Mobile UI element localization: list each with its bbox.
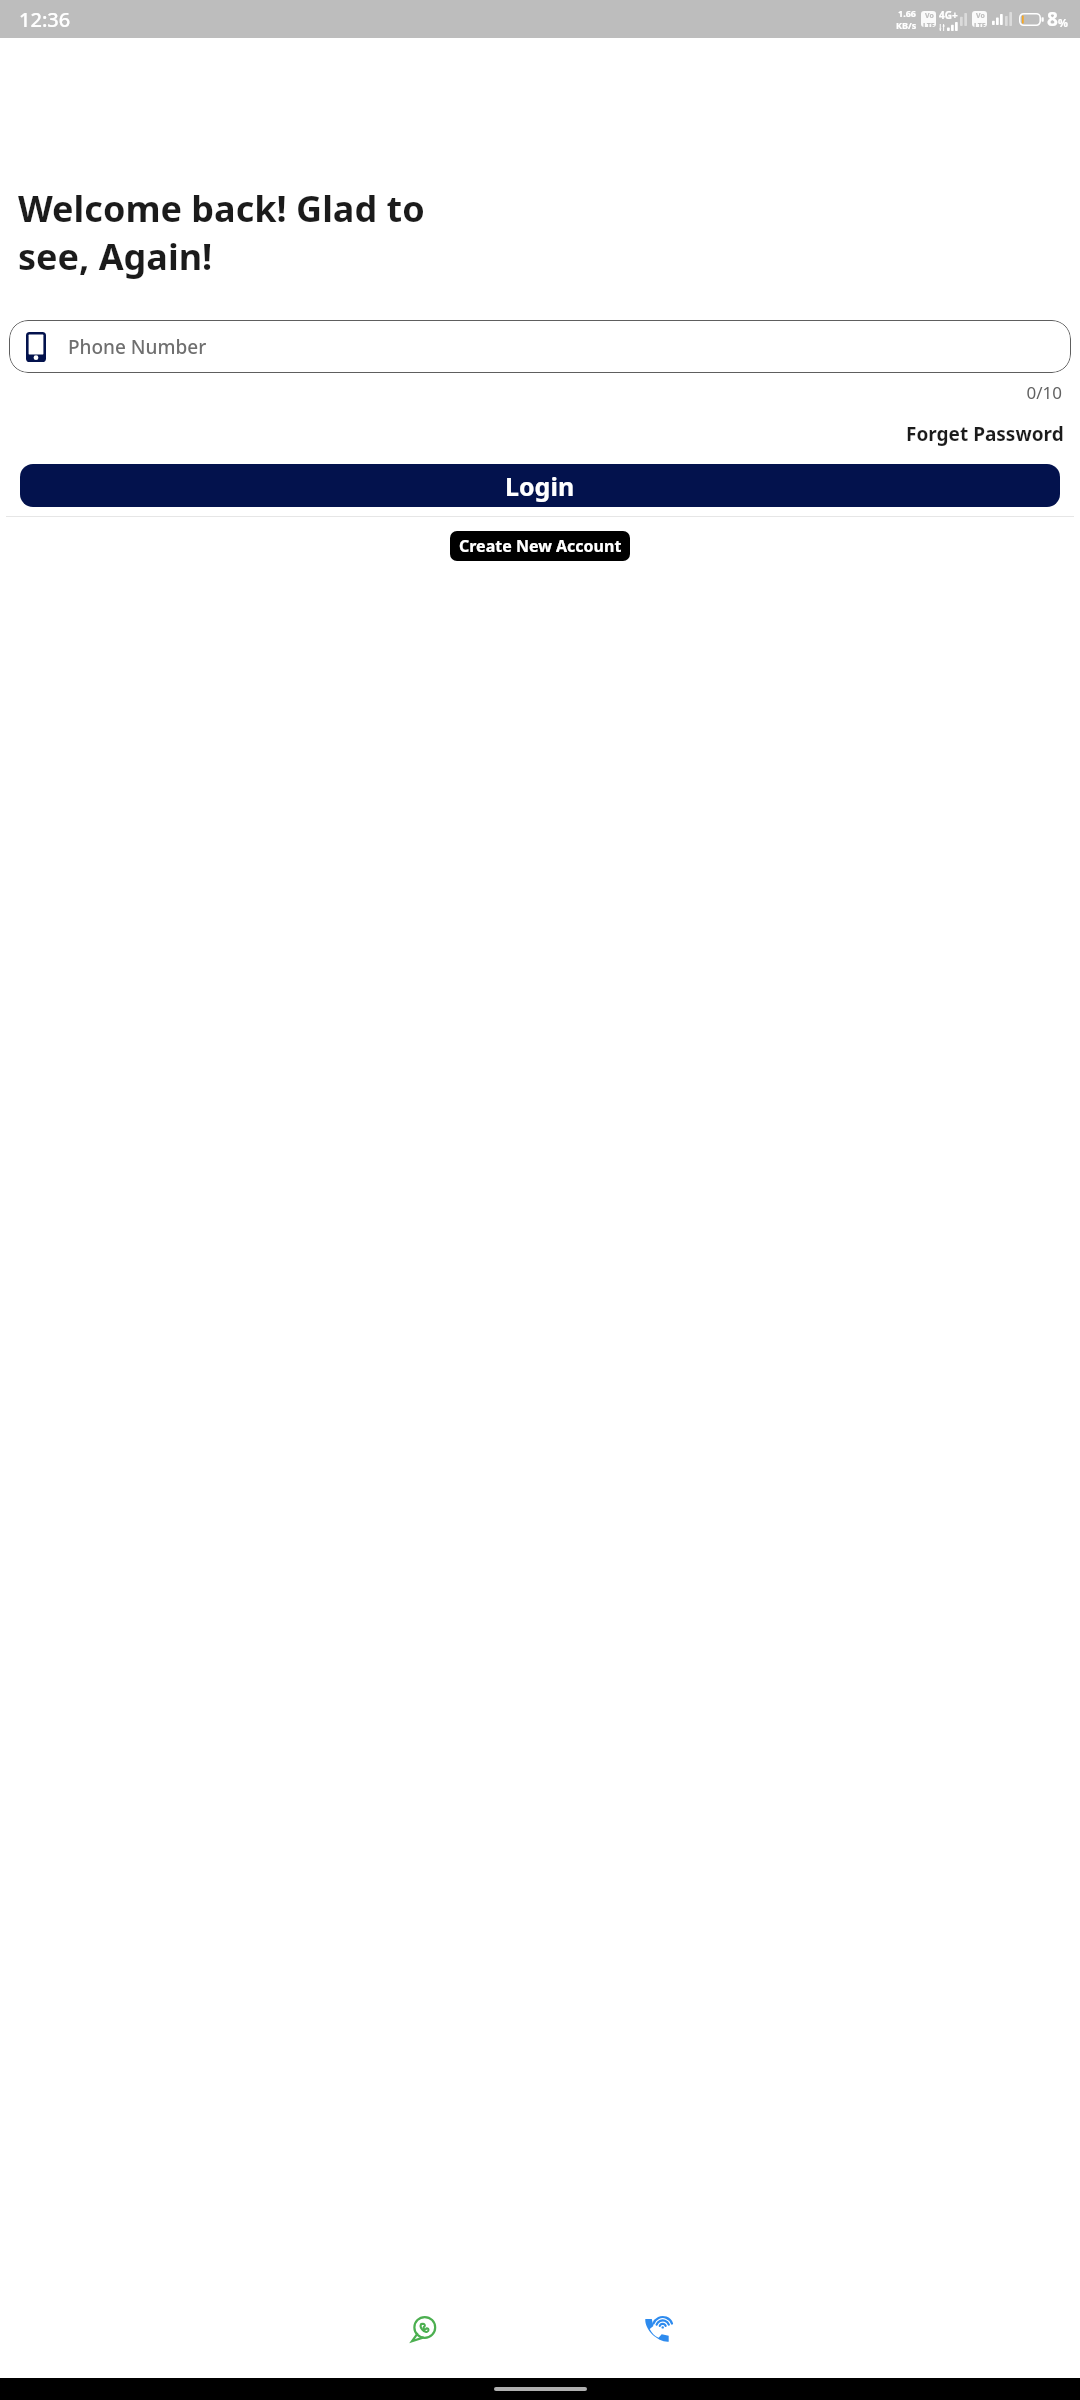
- button[interactable]: Forget Password: [904, 419, 1066, 449]
- button[interactable]: Contact us on WhatsApp: [400, 2305, 448, 2353]
- staticText: 1.66: [898, 7, 916, 19]
- staticText: Forget Password: [906, 421, 1064, 447]
- staticText: Vo: [925, 11, 934, 21]
- staticText: 0/10: [0, 381, 1062, 404]
- staticText: Phone Number: [68, 334, 207, 360]
- button[interactable]: Login: [20, 464, 1060, 507]
- staticText: Vo: [976, 11, 985, 21]
- button[interactable]: Create New Account: [450, 531, 630, 561]
- staticText: Create New Account: [459, 535, 622, 557]
- button[interactable]: Wifi calling: [633, 2305, 681, 2353]
- staticText: %: [1058, 15, 1068, 30]
- staticText: LTE: [923, 21, 935, 27]
- staticText: Login: [505, 469, 575, 503]
- staticText: KB/s: [896, 19, 917, 31]
- staticText: 8: [1047, 6, 1058, 32]
- staticText: 4G+: [939, 8, 958, 22]
- staticText: LTE: [974, 21, 986, 27]
- button[interactable]: Phone Number: [9, 320, 1071, 373]
- staticText: Welcome back! Glad to see, Again!: [18, 184, 1068, 280]
- staticText: 12:36: [19, 6, 71, 33]
